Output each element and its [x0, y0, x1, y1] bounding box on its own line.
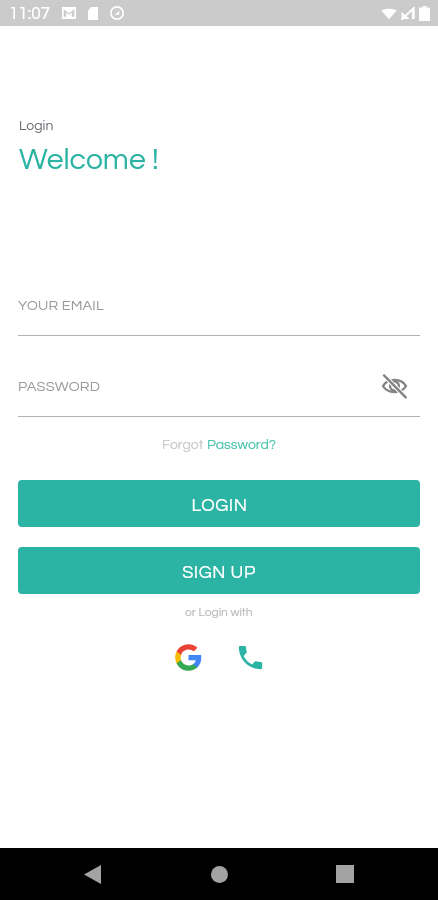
- staticText: SIGN UP: [182, 563, 256, 582]
- staticText: Login: [19, 119, 54, 133]
- button[interactable]: Sign in with Google: [168, 637, 208, 677]
- staticText: LOGIN: [191, 496, 248, 515]
- button[interactable]: Show password: [377, 371, 411, 401]
- staticText: Welcome !: [19, 144, 159, 175]
- button[interactable]: SIGN UP: [18, 547, 420, 594]
- staticText: PASSWORD: [18, 379, 101, 394]
- button[interactable]: Forgot: [156, 434, 282, 456]
- button[interactable]: Home: [195, 850, 243, 898]
- button[interactable]: LOGIN: [18, 480, 420, 527]
- staticText: 11:07: [9, 5, 50, 23]
- staticText: YOUR EMAIL: [18, 298, 104, 313]
- staticText: Password?: [207, 438, 276, 452]
- staticText: or Login with: [185, 606, 253, 618]
- button[interactable]: Sign in with phone: [230, 637, 270, 677]
- button[interactable]: Back: [68, 850, 116, 898]
- button[interactable]: Recent apps: [321, 850, 369, 898]
- staticText: Forgot: [162, 438, 207, 452]
